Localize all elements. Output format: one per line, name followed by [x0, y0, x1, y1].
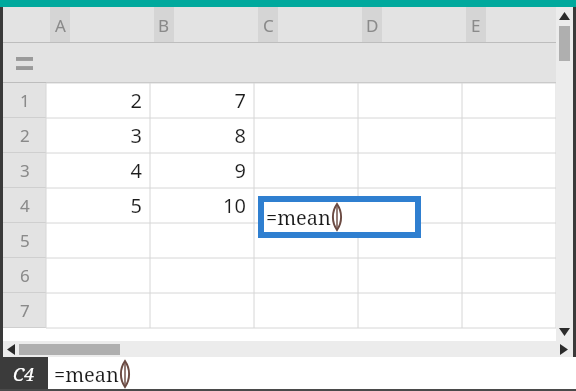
button[interactable]: Scroll up: [556, 7, 573, 25]
button[interactable]: =mean: [54, 357, 576, 391]
button[interactable]: C: [254, 7, 358, 43]
staticText: 7: [20, 299, 30, 322]
button[interactable]: 1: [3, 83, 46, 118]
staticText: 2: [20, 124, 30, 147]
staticText: 3: [20, 159, 30, 182]
staticText: A: [55, 14, 66, 37]
staticText: =mean: [266, 204, 331, 231]
staticText: =mean: [54, 361, 119, 388]
button[interactable]: 6: [3, 258, 46, 293]
button[interactable]: 8: [150, 118, 246, 153]
button[interactable]: 5: [46, 188, 142, 223]
staticText: 8: [234, 122, 246, 149]
staticText: C: [263, 14, 274, 37]
staticText: 1: [20, 89, 30, 112]
button[interactable]: =mean: [261, 199, 418, 235]
staticText: C4: [13, 362, 35, 387]
staticText: 9: [234, 157, 246, 184]
staticText: 5: [20, 229, 30, 252]
button[interactable]: 7: [150, 83, 246, 118]
button[interactable]: B: [150, 7, 254, 43]
staticText: E: [471, 14, 481, 37]
button[interactable]: 3: [46, 118, 142, 153]
button[interactable]: 7: [3, 293, 46, 328]
button[interactable]: 2: [46, 83, 142, 118]
button[interactable]: 2: [3, 118, 46, 153]
staticText: 5: [130, 192, 142, 219]
staticText: 4: [20, 194, 30, 217]
button[interactable]: 10: [150, 188, 246, 223]
staticText: 4: [130, 157, 142, 184]
staticText: 3: [130, 122, 142, 149]
button[interactable]: Formula menu: [3, 43, 46, 83]
button[interactable]: D: [358, 7, 462, 43]
button[interactable]: 9: [150, 153, 246, 188]
button[interactable]: 3: [3, 153, 46, 188]
staticText: B: [158, 14, 170, 37]
button[interactable]: Scroll right: [556, 341, 572, 357]
button[interactable]: 4: [46, 153, 142, 188]
button[interactable]: C4: [0, 357, 48, 391]
staticText: 7: [234, 87, 246, 114]
button[interactable]: Scroll left: [3, 341, 19, 357]
staticText: D: [366, 14, 379, 37]
button[interactable]: A: [46, 7, 150, 43]
button[interactable]: 4: [3, 188, 46, 223]
staticText: 10: [223, 192, 246, 219]
button[interactable]: Scroll down: [556, 323, 573, 341]
button[interactable]: 5: [3, 223, 46, 258]
button[interactable]: E: [462, 7, 556, 43]
staticText: 6: [20, 264, 30, 287]
staticText: 2: [130, 87, 142, 114]
